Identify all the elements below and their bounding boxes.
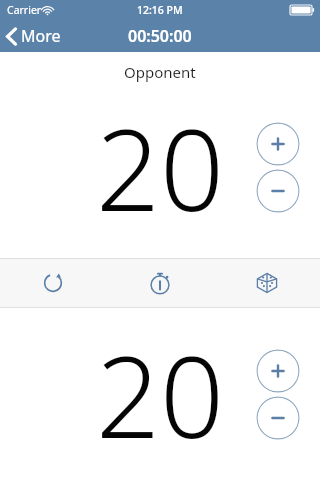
button[interactable]: Decrease life [256,169,300,213]
button[interactable]: Increase life [256,349,300,393]
staticText: 12:16 PM [137,3,183,17]
button[interactable]: Increase life [256,122,300,166]
button[interactable]: More [0,23,71,49]
button[interactable]: 20 [60,91,260,244]
button[interactable]: Decrease life [256,396,300,440]
staticText: 00:50:00 [128,25,192,47]
button[interactable]: Reset [0,259,106,307]
button[interactable]: Timer [106,259,213,307]
button[interactable]: Roll dice [213,259,320,307]
button[interactable]: 20 [60,318,260,471]
staticText: More [21,25,61,47]
staticText: 20 [96,318,224,471]
staticText: Opponent [124,62,196,82]
staticText: 20 [96,91,224,244]
staticText: Carrier [7,3,42,17]
